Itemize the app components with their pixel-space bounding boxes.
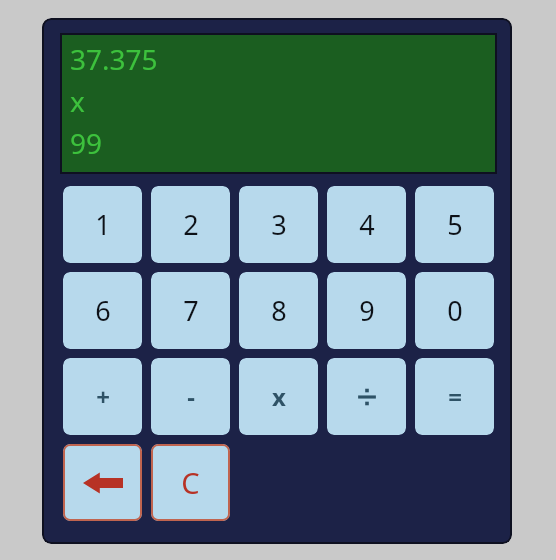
button[interactable]: 3 bbox=[239, 186, 318, 263]
button[interactable]: 6 bbox=[63, 272, 142, 349]
staticText: 5 bbox=[447, 206, 463, 243]
staticText: = bbox=[448, 380, 462, 413]
button[interactable]: 2 bbox=[151, 186, 230, 263]
staticText: 8 bbox=[271, 292, 287, 329]
button[interactable]: 8 bbox=[239, 272, 318, 349]
button[interactable]: = bbox=[415, 358, 494, 435]
staticText: - bbox=[187, 380, 195, 413]
button[interactable]: C bbox=[151, 444, 230, 521]
staticText: C bbox=[181, 463, 200, 502]
button[interactable]: 4 bbox=[327, 186, 406, 263]
staticText: 9 bbox=[359, 292, 375, 329]
button[interactable]: 5 bbox=[415, 186, 494, 263]
staticText: 6 bbox=[95, 292, 111, 329]
staticText: x bbox=[70, 82, 85, 120]
button[interactable]: 7 bbox=[151, 272, 230, 349]
staticText: 99 bbox=[70, 124, 103, 162]
staticText: 3 bbox=[271, 206, 287, 243]
staticText: 37.375 bbox=[70, 40, 158, 78]
button[interactable]: 9 bbox=[327, 272, 406, 349]
staticText: 7 bbox=[183, 292, 199, 329]
staticText: 1 bbox=[95, 206, 111, 243]
button[interactable]: - bbox=[151, 358, 230, 435]
staticText: 0 bbox=[447, 292, 463, 329]
button[interactable]: + bbox=[63, 358, 142, 435]
button[interactable]: 0 bbox=[415, 272, 494, 349]
staticText: 4 bbox=[359, 206, 375, 243]
button[interactable]: x bbox=[239, 358, 318, 435]
staticText: 2 bbox=[183, 206, 199, 243]
button[interactable]: 37.375 bbox=[62, 35, 495, 172]
button[interactable]: 1 bbox=[63, 186, 142, 263]
staticText: + bbox=[96, 380, 110, 413]
button[interactable] bbox=[327, 358, 406, 435]
button[interactable]: Backspace bbox=[63, 444, 142, 521]
staticText: x bbox=[272, 380, 286, 413]
